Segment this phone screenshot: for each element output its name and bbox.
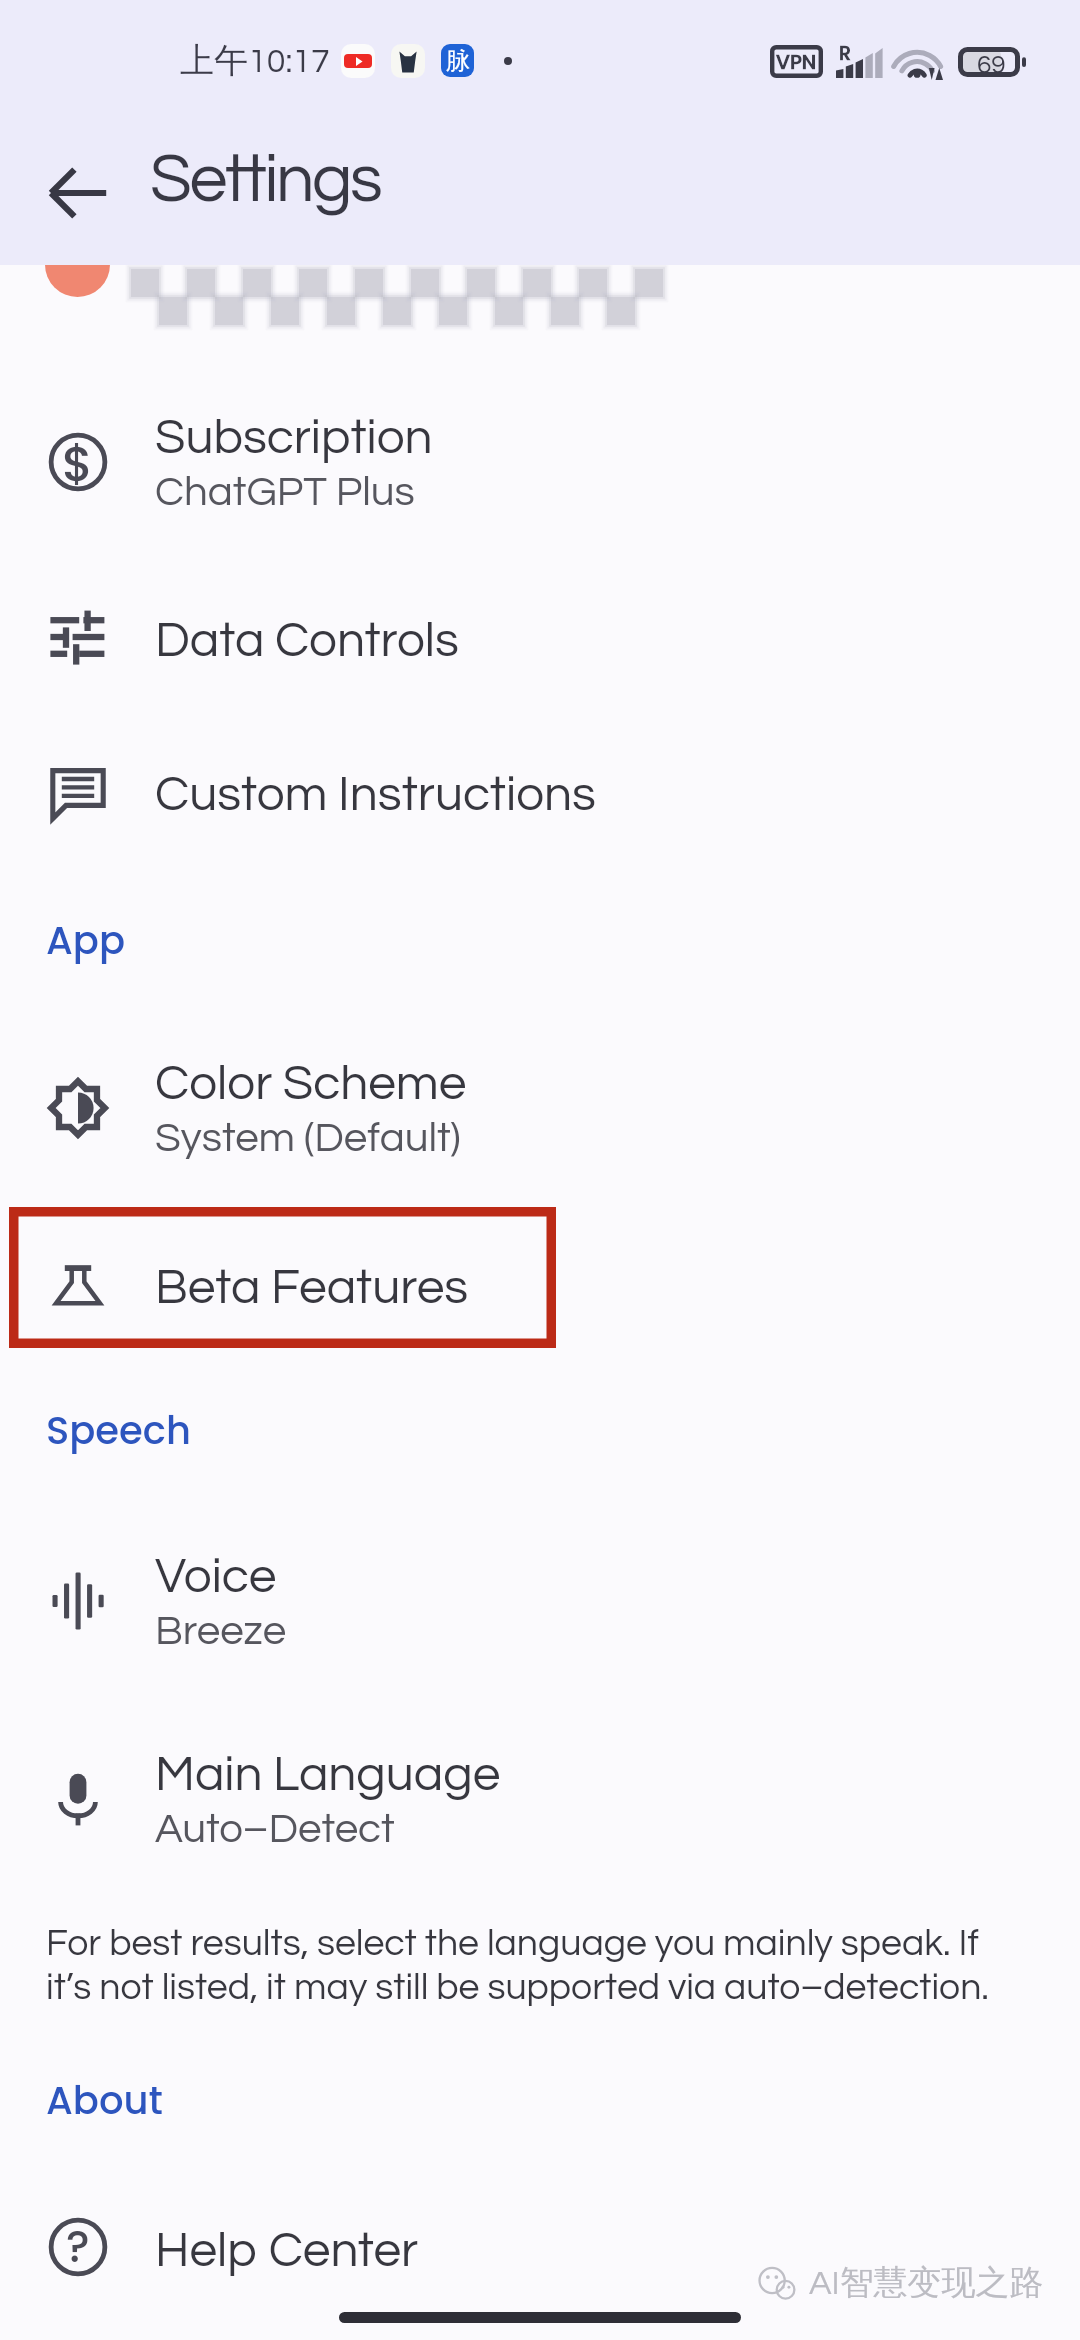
staticText: Main Language [155,1749,501,1800]
button[interactable]: Custom Instructions [0,719,1080,869]
staticText: System (Default) [155,1117,461,1160]
button[interactable]: $ [0,361,1080,537]
staticText: ? [66,2216,90,2276]
staticText: AI智慧变现之路 [809,2261,1044,2304]
staticText: Custom Instructions [155,769,596,820]
staticText: Auto–Detect [155,1808,395,1851]
button[interactable]: ? [0,2175,1080,2325]
button[interactable]: Back [28,143,128,243]
staticText: Subscription [155,412,433,463]
button[interactable]: Beta Features [0,1212,1080,1362]
staticText: Settings [150,145,381,215]
staticText: About [46,2074,163,2128]
staticText: Beta Features [155,1262,469,1313]
button[interactable]: Voice [0,1500,1080,1676]
button[interactable]: Main Language [0,1698,1080,1874]
staticText: VPN [776,48,817,76]
staticText: Color Scheme [155,1058,467,1109]
staticText: Voice [155,1551,277,1602]
staticText: 上午10:17 [180,39,330,82]
staticText: For best results, select the language yo… [46,1924,1024,2007]
button[interactable]: Data Controls [0,565,1080,715]
staticText: 脉 [446,46,470,76]
staticText: App [46,914,126,968]
staticText: Speech [46,1404,191,1458]
staticText: Breeze [155,1610,287,1653]
staticText: $ [62,431,94,491]
staticText: ChatGPT Plus [155,471,415,514]
button[interactable]: Color Scheme [0,1007,1080,1183]
staticText: Help Center [155,2225,419,2276]
staticText: R [839,40,852,67]
staticText: Data Controls [155,615,459,666]
staticText: 69 [977,52,1006,79]
